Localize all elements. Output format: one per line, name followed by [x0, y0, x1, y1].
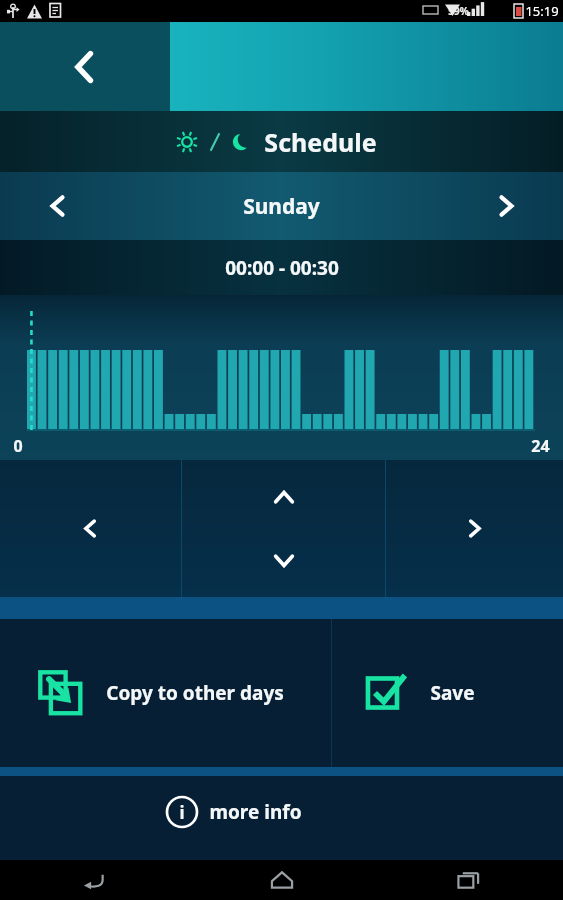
button[interactable]: Recents: [445, 860, 493, 900]
button[interactable]: Previous slot: [0, 460, 181, 597]
staticText: Copy to other days: [106, 680, 284, 706]
staticText: more info: [209, 799, 302, 825]
staticText: 15:19: [525, 2, 559, 20]
staticText: 59%: [448, 4, 469, 18]
button[interactable]: Copy to other days: [0, 619, 331, 767]
button[interactable]: Next slot: [386, 460, 563, 597]
button[interactable]: Next day: [448, 172, 563, 240]
button[interactable]: Decrease: [256, 532, 312, 588]
staticText: Sunday: [243, 192, 320, 221]
staticText: Schedule: [264, 125, 377, 159]
staticText: 0: [13, 435, 23, 457]
button[interactable]: Home: [258, 860, 306, 900]
button[interactable]: Save: [332, 619, 563, 767]
staticText: i: [179, 801, 185, 824]
staticText: 00:00 - 00:30: [225, 255, 339, 281]
button[interactable]: Schedule: [0, 111, 563, 172]
staticText: Save: [430, 680, 475, 706]
button[interactable]: i: [0, 776, 563, 848]
button[interactable]: Back: [0, 22, 170, 111]
button[interactable]: Previous day: [0, 172, 115, 240]
button[interactable]: Increase: [256, 470, 312, 526]
staticText: 24: [531, 435, 550, 457]
button[interactable]: Back: [70, 860, 118, 900]
